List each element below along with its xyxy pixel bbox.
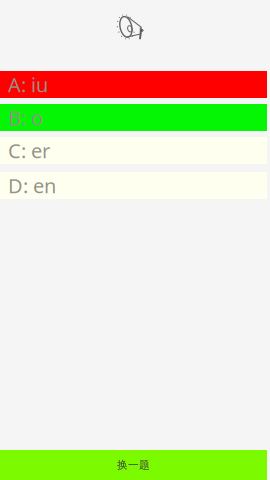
staticText: A: iu xyxy=(8,71,48,98)
staticText: C: er xyxy=(8,137,50,164)
button[interactable]: 换一题 xyxy=(0,450,267,480)
button[interactable]: B: o xyxy=(0,104,267,131)
button[interactable]: Play pronunciation xyxy=(110,10,151,45)
button[interactable]: A: iu xyxy=(0,71,267,98)
button[interactable]: D: en xyxy=(0,172,267,199)
staticText: 换一题 xyxy=(117,458,150,471)
button[interactable]: C: er xyxy=(0,137,267,164)
staticText: D: en xyxy=(8,172,56,199)
staticText: B: o xyxy=(8,104,43,131)
